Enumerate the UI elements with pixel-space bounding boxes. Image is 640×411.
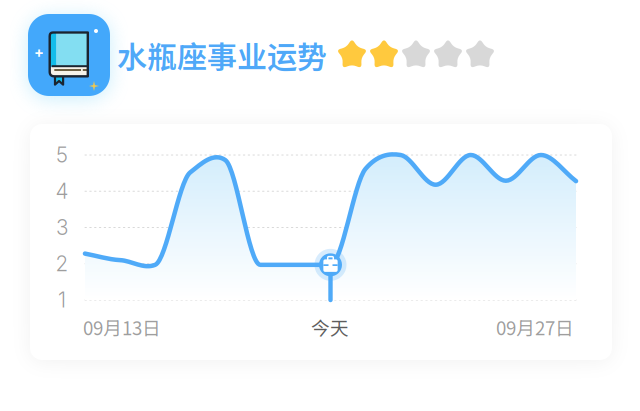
staticText: 09月13日 <box>83 313 161 340</box>
staticText: 3 <box>56 215 68 240</box>
staticText: 水瓶座事业运势 <box>117 33 327 77</box>
staticText: + <box>34 43 44 61</box>
staticText: 2 <box>55 251 68 276</box>
staticText: 09月27日 <box>496 313 574 340</box>
staticText: 4 <box>55 179 68 204</box>
staticText: 1 <box>58 287 66 312</box>
button[interactable]: + <box>28 14 640 96</box>
staticText: 今天 <box>311 313 349 340</box>
staticText: 5 <box>56 142 68 167</box>
